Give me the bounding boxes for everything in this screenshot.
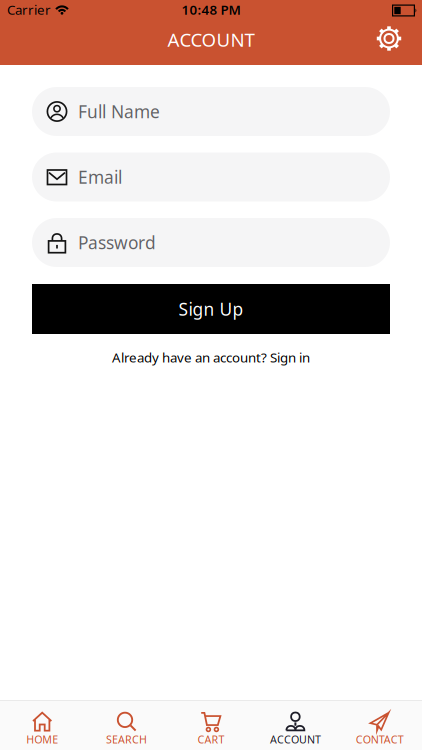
button[interactable] — [375, 24, 403, 52]
button[interactable]: Email — [32, 152, 390, 201]
staticText: SEARCH — [106, 732, 147, 746]
button[interactable]: Sign Up — [32, 284, 390, 334]
button[interactable]: Password — [32, 218, 390, 267]
button[interactable]: Already have an account? Sign in — [112, 348, 310, 366]
staticText: Carrier — [7, 1, 51, 18]
button[interactable]: SEARCH — [84, 700, 169, 750]
button[interactable]: CONTACT — [338, 700, 422, 750]
button[interactable]: ACCOUNT — [253, 700, 338, 750]
staticText: Already have an account? Sign in — [112, 348, 310, 366]
staticText: ACCOUNT — [270, 732, 321, 746]
staticText: Sign Up — [178, 297, 243, 320]
staticText: CONTACT — [356, 732, 404, 746]
staticText: Email — [78, 165, 122, 188]
staticText: Full Name — [78, 100, 160, 123]
button[interactable]: CART — [169, 700, 253, 750]
staticText: CART — [197, 732, 224, 746]
staticText: 10:48 PM — [181, 1, 240, 18]
button[interactable]: Full Name — [32, 87, 390, 136]
staticText: HOME — [26, 732, 58, 746]
staticText: ACCOUNT — [167, 27, 254, 52]
button[interactable]: HOME — [0, 700, 84, 750]
staticText: Password — [78, 231, 156, 254]
